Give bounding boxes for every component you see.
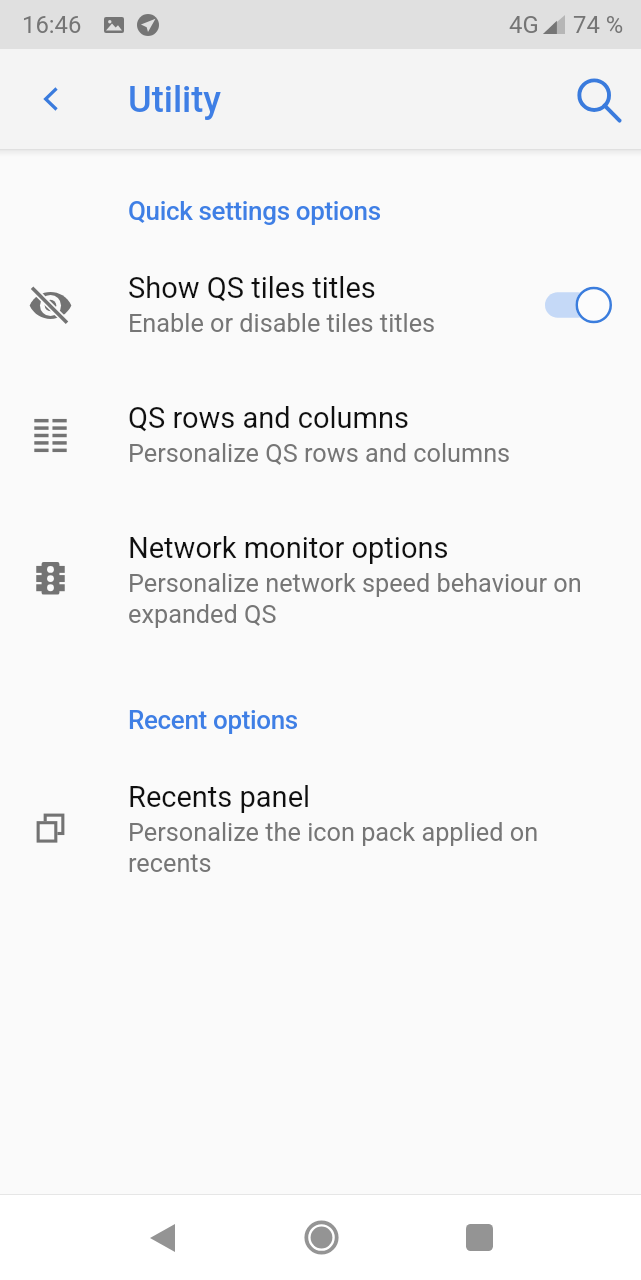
staticText: 74 %: [573, 11, 624, 39]
staticText: Personalize network speed behaviour on e…: [128, 569, 612, 629]
button[interactable]: Home: [242, 1195, 400, 1280]
staticText: Quick settings options: [128, 196, 381, 226]
staticText: Enable or disable tiles titles: [128, 309, 436, 339]
button[interactable]: Show QS tiles titles: [0, 240, 641, 370]
staticText: 4G: [509, 11, 539, 39]
button[interactable]: Search: [541, 49, 641, 149]
button[interactable]: Back: [83, 1195, 242, 1280]
staticText: Show QS tiles titles: [128, 271, 376, 305]
button[interactable]: Recents: [400, 1195, 558, 1280]
staticText: Personalize the icon pack applied on rec…: [128, 818, 612, 878]
button[interactable]: Back: [0, 49, 100, 149]
staticText: Personalize QS rows and columns: [128, 439, 511, 469]
staticText: 16:46: [22, 11, 82, 39]
staticText: Recent options: [128, 705, 298, 735]
staticText: Recents panel: [128, 780, 311, 814]
button[interactable]: Recents panel: [0, 749, 641, 909]
button[interactable]: Network monitor options: [0, 500, 641, 660]
button[interactable]: QS rows and columns: [0, 370, 641, 500]
staticText: Network monitor options: [128, 531, 449, 565]
staticText: QS rows and columns: [128, 401, 410, 435]
button[interactable]: Toggle Show QS tiles titles: [545, 280, 612, 330]
staticText: Utility: [128, 78, 222, 120]
